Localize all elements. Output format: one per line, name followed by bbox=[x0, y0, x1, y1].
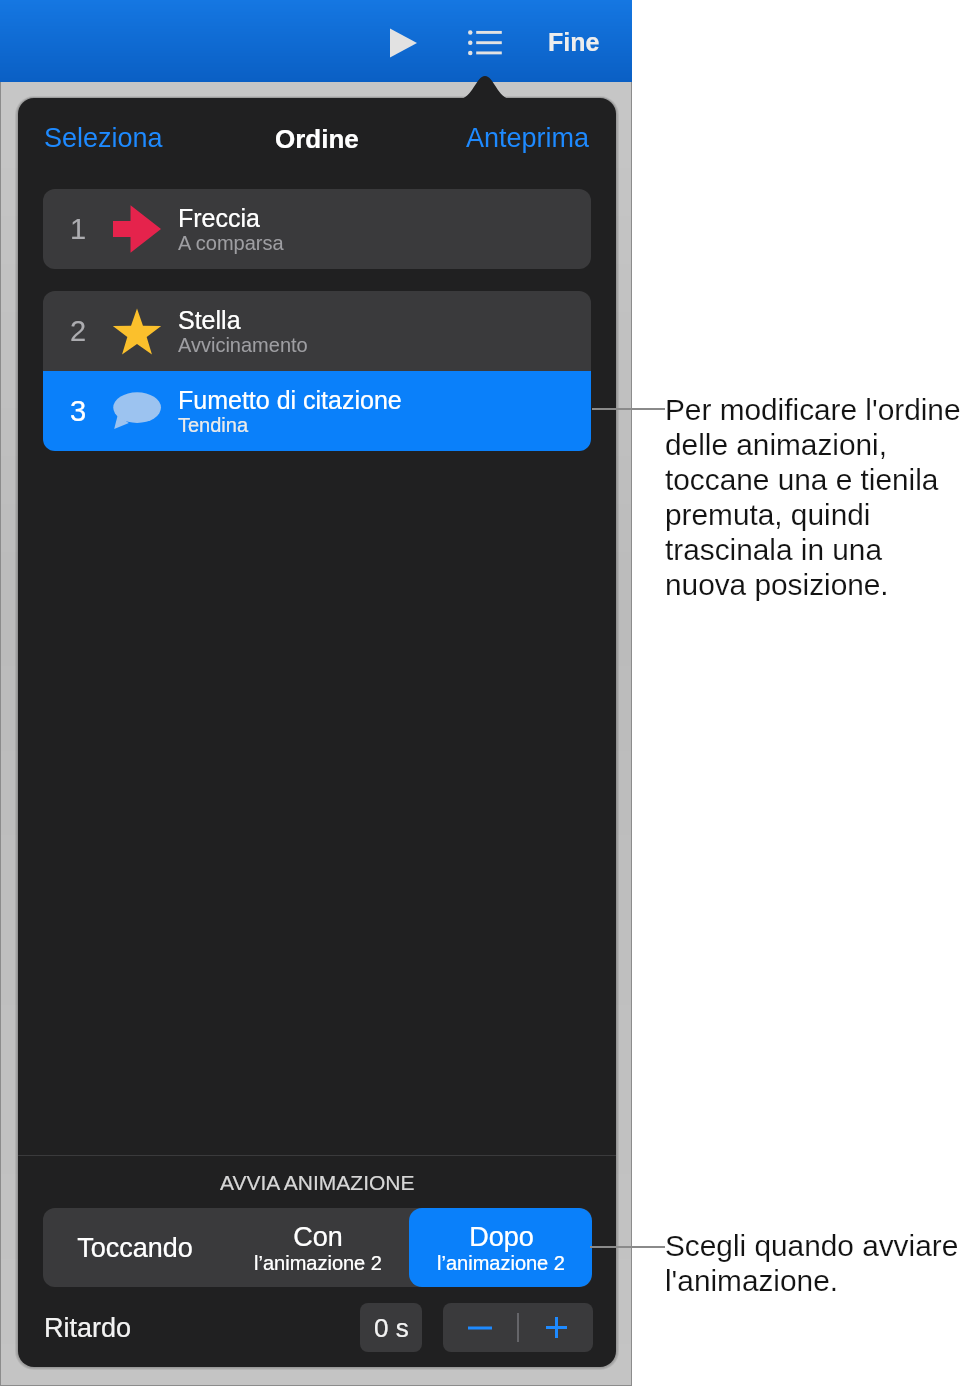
staticText: l’animazione 2 bbox=[437, 1252, 565, 1274]
staticText: A comparsa bbox=[178, 232, 284, 254]
button[interactable]: Ordine animazioni bbox=[452, 14, 518, 70]
button[interactable]: 3 bbox=[43, 371, 591, 451]
staticText: Seleziona bbox=[44, 123, 163, 153]
staticText: Ordine bbox=[275, 124, 359, 153]
button[interactable]: 1 bbox=[43, 189, 591, 269]
staticText: Fumetto di citazione bbox=[178, 386, 402, 414]
staticText: 2 bbox=[70, 315, 87, 347]
staticText: AVVIA ANIMAZIONE bbox=[220, 1171, 415, 1194]
button[interactable]: Ordine bbox=[255, 112, 379, 165]
staticText: Toccando bbox=[77, 1233, 193, 1263]
staticText: 0 s bbox=[374, 1313, 409, 1342]
staticText: Fine bbox=[548, 28, 600, 56]
staticText: Tendina bbox=[178, 414, 249, 436]
button[interactable]: Fine bbox=[532, 14, 616, 70]
button[interactable]: 2 bbox=[43, 291, 591, 371]
staticText: Con bbox=[293, 1222, 343, 1252]
staticText: Dopo bbox=[469, 1222, 534, 1252]
button[interactable]: Dopo bbox=[409, 1208, 592, 1287]
staticText: Freccia bbox=[178, 204, 260, 232]
button[interactable]: 0 s bbox=[360, 1303, 422, 1352]
staticText: Per modificare l'ordine delle animazioni… bbox=[665, 393, 965, 601]
staticText: 1 bbox=[70, 213, 87, 245]
button[interactable]: Diminuisci bbox=[443, 1303, 517, 1352]
staticText: Ritardo bbox=[44, 1313, 132, 1343]
button[interactable]: Seleziona bbox=[18, 111, 189, 165]
button[interactable]: Riproduci bbox=[374, 14, 432, 70]
button[interactable]: Anteprima bbox=[440, 111, 616, 165]
button[interactable]: Aumenta bbox=[519, 1303, 593, 1352]
staticText: l’animazione 2 bbox=[254, 1252, 382, 1274]
staticText: 3 bbox=[70, 395, 87, 427]
button[interactable]: Toccando bbox=[43, 1208, 226, 1287]
staticText: Stella bbox=[178, 306, 241, 334]
staticText: Avvicinamento bbox=[178, 334, 308, 356]
staticText: Anteprima bbox=[466, 123, 590, 153]
button[interactable]: Con bbox=[226, 1208, 409, 1287]
staticText: Scegli quando avviare l'animazione. bbox=[665, 1229, 965, 1297]
